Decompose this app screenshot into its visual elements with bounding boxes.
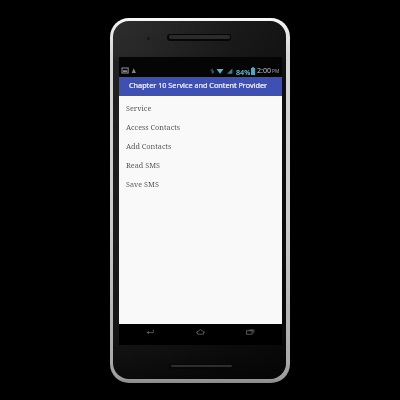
staticText: Service (126, 103, 152, 113)
staticText: Chapter 10 Service and Content Provider (129, 80, 268, 90)
button[interactable]: Chapter 10 Service and Content Provider (119, 77, 282, 96)
button[interactable]: Home (190, 325, 210, 339)
staticText: Save SMS (126, 179, 159, 189)
staticText: 84% (236, 67, 251, 77)
button[interactable]: Recent apps (240, 325, 260, 339)
staticText: Add Contacts (126, 141, 172, 151)
button[interactable]: Read SMS (119, 155, 282, 174)
staticText: Read SMS (126, 160, 160, 170)
button[interactable]: Add Contacts (119, 136, 282, 155)
button[interactable]: Service (119, 98, 282, 117)
button[interactable]: Back (140, 325, 160, 339)
button[interactable]: Save SMS (119, 174, 282, 193)
button[interactable]: Access Contacts (119, 117, 282, 136)
staticText: PM (272, 68, 280, 75)
staticText: 2:00 (257, 66, 271, 76)
staticText: Access Contacts (126, 122, 181, 132)
